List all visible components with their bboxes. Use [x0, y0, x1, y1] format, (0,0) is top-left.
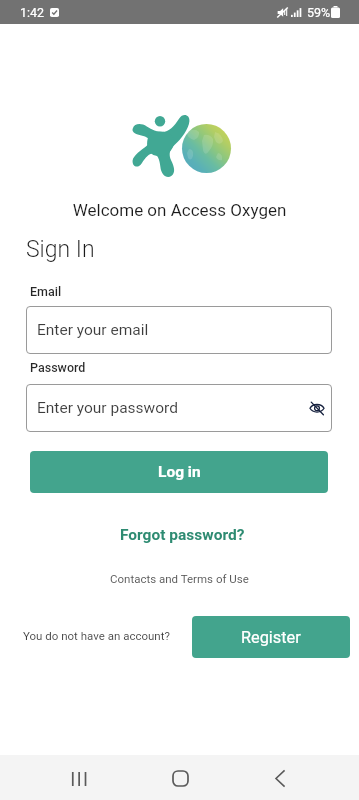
button[interactable]: Show password	[303, 394, 331, 422]
button[interactable]: Home	[157, 756, 203, 800]
button[interactable]: Enter your email	[26, 306, 332, 354]
staticText: 59%	[307, 5, 331, 20]
staticText: Email	[30, 284, 62, 299]
button[interactable]: Forgot password?	[112, 521, 253, 549]
button[interactable]: Register	[192, 616, 350, 658]
staticText: Forgot password?	[120, 526, 245, 544]
button[interactable]: Enter your password	[26, 384, 332, 432]
staticText: Sign In	[26, 236, 95, 263]
staticText: You do not have an account?	[23, 629, 170, 642]
staticText: Enter your password	[37, 399, 178, 417]
button[interactable]: Log in	[30, 451, 328, 493]
staticText: Log in	[158, 463, 201, 481]
staticText: Welcome on Access Oxygen	[0, 200, 359, 220]
staticText: Register	[241, 628, 301, 647]
other: Alarm set	[50, 8, 59, 17]
staticText: Contacts and Terms of Use	[110, 572, 249, 585]
button[interactable]: Recent apps	[56, 756, 102, 800]
staticText: Password	[30, 360, 86, 375]
staticText: 1:42	[20, 5, 45, 20]
staticText: Enter your email	[37, 321, 149, 339]
button[interactable]: Back	[257, 756, 303, 800]
button[interactable]: Contacts and Terms of Use	[102, 568, 257, 589]
